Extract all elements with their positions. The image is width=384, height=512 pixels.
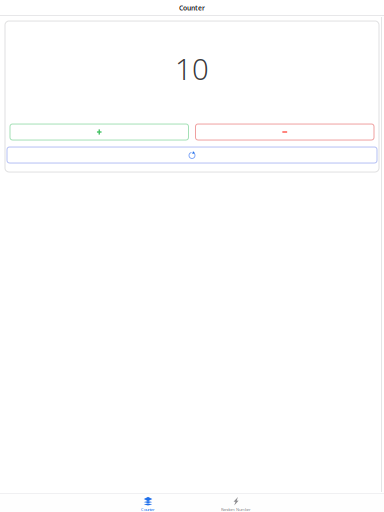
button[interactable] [7, 147, 377, 163]
button[interactable] [10, 124, 188, 140]
staticText: Counter [179, 4, 205, 12]
button[interactable] [195, 124, 374, 140]
staticText: 10 [175, 49, 209, 88]
button[interactable]: Random Number [206, 495, 266, 512]
staticText: Counter [141, 507, 155, 512]
button[interactable]: Counter [118, 495, 178, 512]
staticText: Random Number [221, 507, 251, 512]
